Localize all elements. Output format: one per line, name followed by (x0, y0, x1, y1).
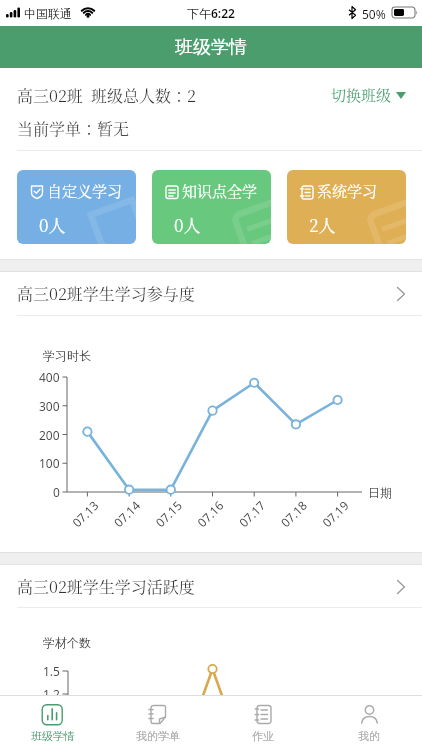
button[interactable]: 系统学习 (287, 170, 406, 244)
button[interactable]: 自定义学习 (17, 170, 136, 244)
staticText: 知识点全学 (182, 180, 258, 202)
staticText: 中国联通 (24, 6, 72, 21)
staticText: 2人 (309, 212, 336, 236)
button[interactable]: 知识点全学 (152, 170, 271, 244)
button[interactable]: 高三02班学生学习参与度 (0, 272, 422, 315)
staticText: 作业 (252, 729, 274, 743)
button[interactable]: 我的学单 (105, 695, 210, 750)
staticText: 班级学情 (31, 729, 75, 743)
staticText: 0人 (174, 212, 201, 236)
staticText: 系统学习 (317, 180, 378, 202)
button[interactable]: 作业 (210, 695, 316, 750)
staticText: 高三02班学生学习参与度 (17, 282, 195, 305)
staticText: 我的 (358, 729, 380, 743)
staticText: 高三02班 班级总人数：2 (17, 84, 196, 107)
staticText: 50% (362, 6, 386, 22)
button[interactable]: 高三02班学生学习活跃度 (0, 565, 422, 608)
staticText: 下午6:22 (187, 5, 235, 21)
staticText: 0人 (39, 212, 66, 236)
button[interactable]: 切换班级 (325, 82, 412, 108)
staticText: 切换班级 (331, 84, 392, 106)
button[interactable]: 班级学情 (0, 695, 105, 750)
staticText: 当前学单：暂无 (17, 117, 130, 140)
staticText: 我的学单 (136, 729, 180, 743)
staticText: 自定义学习 (47, 180, 123, 202)
staticText: 班级学情 (175, 36, 247, 59)
button[interactable]: 我的 (316, 695, 422, 750)
staticText: 高三02班学生学习活跃度 (17, 575, 195, 598)
